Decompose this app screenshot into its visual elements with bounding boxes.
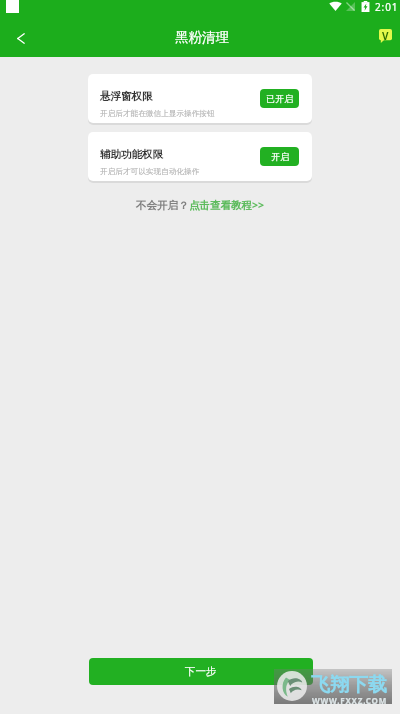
staticText: 已开启 (266, 93, 293, 104)
staticText: 黑粉清理 (175, 29, 229, 46)
staticText: 开启后才能在微信上显示操作按钮 (100, 109, 215, 119)
staticText: 飞翔下载 (311, 673, 387, 697)
staticText: V (382, 29, 389, 43)
staticText: WWW.FXXZ.COM (312, 695, 388, 706)
button[interactable]: 点击查看教程>> (189, 198, 265, 212)
button[interactable]: 已开启 (260, 89, 299, 108)
button[interactable]: 开启 (260, 147, 299, 166)
staticText: 不会开启？ (136, 199, 189, 212)
staticText: 点击查看教程>> (189, 198, 265, 212)
button[interactable]: Back (4, 20, 37, 57)
staticText: 下一步 (185, 665, 217, 678)
button[interactable]: Feedback (372, 23, 398, 49)
staticText: 辅助功能权限 (100, 148, 163, 161)
staticText: 2:01 (375, 0, 399, 14)
button[interactable]: 下一步 (89, 658, 313, 685)
staticText: 开启后才可以实现自动化操作 (100, 167, 200, 177)
staticText: 开启 (271, 151, 289, 162)
button[interactable]: 辅助功能权限 (88, 132, 312, 181)
button[interactable]: 悬浮窗权限 (88, 74, 312, 123)
staticText: 悬浮窗权限 (100, 90, 153, 103)
